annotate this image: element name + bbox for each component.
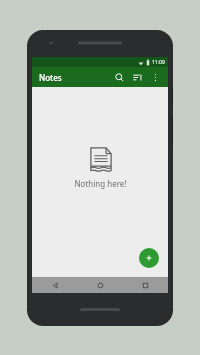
- button[interactable]: Add note: [139, 248, 159, 268]
- staticText: Nothing here!: [74, 178, 127, 189]
- staticText: Notes: [39, 72, 62, 83]
- button[interactable]: Home: [78, 277, 123, 293]
- button[interactable]: Sort: [128, 68, 146, 86]
- button[interactable]: More options: [146, 68, 164, 86]
- button[interactable]: Search: [110, 68, 128, 86]
- button[interactable]: Back: [32, 277, 78, 293]
- button[interactable]: Recent apps: [123, 277, 168, 293]
- staticText: 11:09: [152, 59, 165, 66]
